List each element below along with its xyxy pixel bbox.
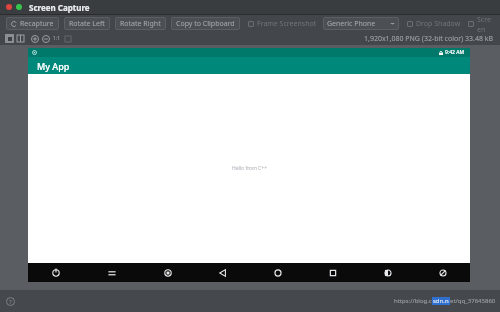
staticText: Copy to Clipboard [176, 19, 235, 29]
staticText: Hello from C++ [232, 165, 267, 172]
button[interactable]: Copy to Clipboard [171, 17, 240, 30]
staticText: 1:1 [53, 35, 61, 42]
button[interactable]: Disconnect [415, 263, 470, 282]
staticText: Rotate Right [120, 19, 161, 29]
staticText: Screen Capture [29, 2, 90, 13]
staticText: Screen Glare [477, 15, 494, 32]
button[interactable]: Zoom out [40, 33, 51, 44]
button[interactable]: Maximize [16, 4, 22, 10]
button[interactable]: Power [28, 263, 84, 282]
staticText: ? [9, 298, 12, 306]
button[interactable]: Zoom in [29, 33, 40, 44]
button[interactable]: My App [28, 57, 470, 74]
button[interactable]: Drop Shadow [407, 19, 461, 29]
button[interactable]: Recents [305, 263, 360, 282]
button[interactable]: Screenshot [360, 263, 415, 282]
button[interactable]: Fit to window [4, 33, 15, 44]
staticText: My App [37, 60, 70, 72]
button[interactable]: Screen Glare [468, 15, 494, 32]
staticText: sdn.n [433, 297, 449, 305]
staticText: Drop Shadow [416, 19, 461, 29]
button[interactable]: Grid [15, 33, 26, 44]
staticText: https://blog.c [394, 297, 432, 305]
button[interactable]: Help [6, 297, 15, 306]
button[interactable]: Actual size [51, 33, 62, 44]
button[interactable]: Select [62, 33, 73, 44]
button[interactable]: Back [195, 263, 250, 282]
button[interactable]: Rotate Right [115, 17, 166, 30]
staticText: et/qq_37645860 [450, 297, 496, 305]
staticText: Recapture [20, 19, 54, 29]
button[interactable]: Home [250, 263, 305, 282]
button[interactable]: Rotate [140, 263, 195, 282]
button[interactable]: Volume [84, 263, 140, 282]
staticText: Rotate Left [69, 19, 105, 29]
staticText: 1,920x1,080 PNG (32-bit color) 33.48 kB [364, 34, 494, 44]
staticText: Generic Phone [327, 19, 376, 29]
button[interactable]: Close [6, 4, 12, 10]
staticText: 9:42 AM [445, 49, 465, 56]
button[interactable]: Generic Phone [323, 17, 399, 30]
button[interactable]: Frame Screenshot [248, 19, 317, 29]
staticText: Frame Screenshot [257, 19, 317, 29]
button[interactable]: Rotate Left [64, 17, 110, 30]
button[interactable]: Recapture [6, 17, 59, 30]
